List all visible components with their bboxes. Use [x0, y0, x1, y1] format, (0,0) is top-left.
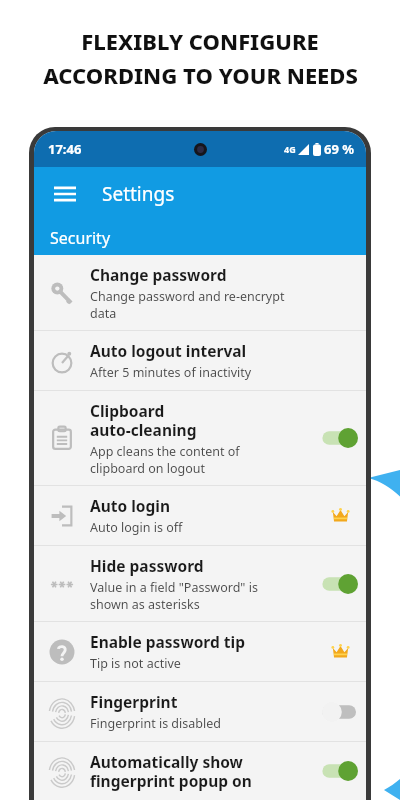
staticText: Change password: [90, 264, 227, 285]
staticText: App cleans the content of clipboard on l…: [90, 443, 240, 476]
button[interactable]: On: [320, 573, 360, 595]
staticText: Settings: [102, 181, 175, 207]
button[interactable]: Off: [320, 701, 360, 723]
staticText: 69 %: [324, 140, 354, 158]
staticText: Auto login: [90, 495, 171, 516]
staticText: Auto logout interval: [90, 340, 247, 361]
button[interactable]: On: [320, 760, 360, 782]
button[interactable]: Auto login: [34, 486, 366, 545]
button[interactable]: Menu: [34, 167, 366, 221]
staticText: Tip is not active: [90, 655, 181, 672]
staticText: 4G: [284, 143, 296, 155]
button[interactable]: Automatically show fingerprint popup on …: [34, 742, 366, 800]
staticText: Enable password tip: [90, 631, 245, 652]
staticText: Security: [50, 227, 111, 249]
staticText: Change password and re-encrypt data: [90, 288, 308, 321]
button[interactable]: Menu: [52, 181, 78, 207]
staticText: Automatically show fingerprint popup on …: [90, 751, 252, 791]
staticText: Fingerprint is disabled: [90, 715, 221, 732]
button[interactable]: Premium: [332, 643, 349, 660]
staticText: 17:46: [48, 140, 82, 158]
button[interactable]: Hide password: [34, 546, 366, 621]
staticText: Fingerprint: [90, 691, 178, 712]
staticText: Auto login is off: [90, 519, 183, 536]
button[interactable]: Fingerprint: [34, 682, 366, 741]
button[interactable]: Change password: [34, 255, 366, 330]
button[interactable]: On: [320, 427, 360, 449]
staticText: Value in a field "Password" is shown as …: [90, 579, 258, 612]
button[interactable]: Enable password tip: [34, 622, 366, 681]
button[interactable]: Auto logout interval: [34, 331, 366, 390]
staticText: Clipboard auto-cleaning: [90, 400, 197, 440]
staticText: ACCORDING TO YOUR NEEDS: [43, 60, 358, 90]
button[interactable]: Clipboard auto-cleaning: [34, 391, 366, 485]
button[interactable]: Premium: [332, 507, 349, 524]
staticText: FLEXIBLY CONFIGURE: [81, 26, 319, 56]
staticText: Hide password: [90, 555, 204, 576]
staticText: After 5 minutes of inactivity: [90, 364, 252, 381]
